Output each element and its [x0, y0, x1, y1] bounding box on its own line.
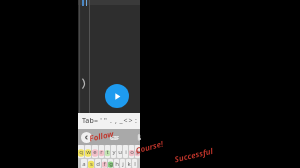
- button[interactable]: ": [103, 113, 108, 129]
- button[interactable]: .: [108, 113, 113, 129]
- button[interactable]: w: [85, 145, 91, 158]
- staticText: Course!: [134, 137, 165, 155]
- staticText: Follow: [88, 127, 115, 143]
- button[interactable]: i: [123, 145, 128, 158]
- button[interactable]: f: [102, 159, 107, 168]
- staticText: >: [128, 116, 133, 126]
- staticText: k: [127, 160, 131, 168]
- button[interactable]: q: [78, 145, 84, 158]
- button[interactable]: j: [120, 159, 125, 168]
- button[interactable]: >: [128, 113, 133, 129]
- button[interactable]: u: [117, 145, 122, 158]
- button[interactable]: Clipboard: [138, 131, 140, 143]
- button[interactable]: p: [135, 145, 140, 158]
- staticText: =: [94, 116, 98, 126]
- staticText: p: [136, 148, 140, 156]
- staticText: s: [90, 160, 93, 168]
- button[interactable]: g: [108, 159, 113, 168]
- staticText: d: [96, 160, 100, 168]
- staticText: j: [122, 160, 124, 168]
- button[interactable]: _: [118, 113, 123, 129]
- button[interactable]: =: [94, 113, 98, 129]
- staticText: w: [86, 148, 91, 156]
- staticText: GIF: [110, 134, 120, 141]
- button[interactable]: :: [133, 113, 138, 129]
- staticText: _: [119, 116, 123, 126]
- button[interactable]: y: [111, 145, 116, 158]
- button[interactable]: d: [95, 159, 101, 168]
- staticText: ,: [115, 116, 117, 126]
- staticText: u: [118, 148, 122, 156]
- button[interactable]: e: [92, 145, 98, 158]
- staticText: l: [134, 160, 136, 168]
- staticText: q: [79, 148, 83, 156]
- staticText: g: [109, 160, 113, 168]
- staticText: t: [106, 148, 109, 156]
- button[interactable]: Tab: [82, 116, 94, 126]
- staticText: e: [93, 148, 97, 156]
- button[interactable]: Back: [81, 132, 92, 143]
- staticText: :: [135, 116, 137, 126]
- button[interactable]: l: [132, 159, 137, 168]
- staticText: r: [100, 148, 103, 156]
- button[interactable]: <: [123, 113, 128, 129]
- button[interactable]: a: [81, 159, 87, 168]
- staticText: <: [123, 116, 128, 126]
- staticText: ': [100, 116, 102, 126]
- staticText: Tab: [82, 116, 94, 126]
- button[interactable]: GIF: [110, 134, 120, 141]
- staticText: .: [110, 116, 112, 126]
- button[interactable]: h: [114, 159, 119, 168]
- staticText: f: [103, 160, 106, 168]
- button[interactable]: Run: [105, 84, 129, 108]
- staticText: h: [115, 160, 119, 168]
- staticText: a: [82, 160, 86, 168]
- button[interactable]: k: [126, 159, 131, 168]
- staticText: y: [112, 148, 116, 156]
- staticText: Successful: [173, 145, 215, 164]
- button[interactable]: ': [98, 113, 103, 129]
- button[interactable]: t: [105, 145, 110, 158]
- button[interactable]: ,: [113, 113, 118, 129]
- button[interactable]: o: [129, 145, 134, 158]
- button[interactable]: r: [99, 145, 104, 158]
- staticText: o: [130, 148, 134, 156]
- staticText: ": [104, 116, 107, 126]
- button[interactable]: s: [88, 159, 94, 168]
- staticText: i: [125, 148, 127, 156]
